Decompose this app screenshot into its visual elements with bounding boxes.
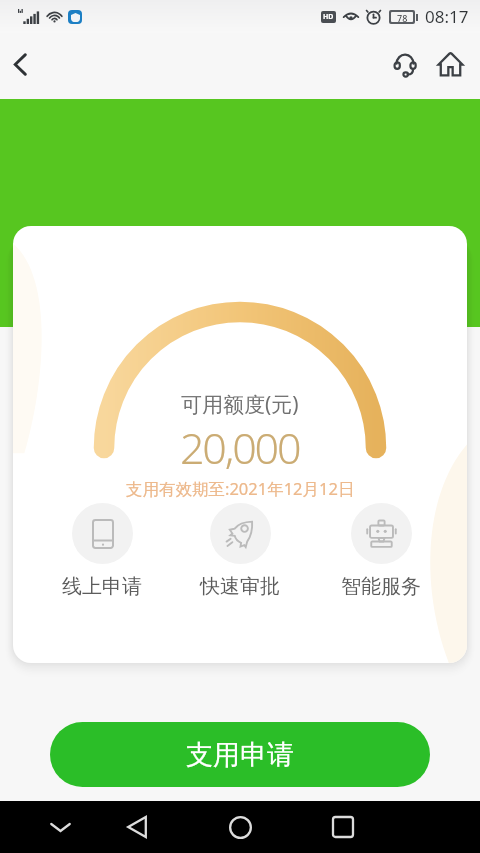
button[interactable]: 线上申请	[52, 503, 152, 599]
staticText: 支用申请	[186, 738, 294, 772]
staticText: 可用额度(元)	[181, 390, 299, 419]
button[interactable]: 支用申请	[50, 722, 430, 787]
button[interactable]: 智能服务	[331, 503, 431, 599]
staticText: 智能服务	[341, 574, 421, 599]
button[interactable]: Back	[115, 805, 159, 849]
staticText: 快速审批	[200, 574, 280, 599]
button[interactable]: Home	[218, 805, 262, 849]
button[interactable]: Back	[2, 47, 37, 82]
staticText: HD	[323, 12, 334, 22]
staticText: 08:17	[425, 5, 469, 28]
staticText: 支用有效期至:2021年12月12日	[126, 477, 355, 500]
staticText: 20,000	[180, 418, 300, 477]
button[interactable]: 快速审批	[190, 503, 290, 599]
staticText: 78	[397, 12, 408, 22]
staticText: 线上申请	[62, 574, 142, 599]
button[interactable]: Home	[437, 51, 464, 78]
button[interactable]: Customer service	[392, 52, 418, 78]
button[interactable]: Recent apps	[321, 805, 365, 849]
button[interactable]: Hide keyboard	[38, 805, 82, 849]
